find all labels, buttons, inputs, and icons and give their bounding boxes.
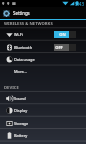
button[interactable]: Wi-Fi on (54, 31, 76, 38)
button[interactable]: Sound (0, 92, 86, 104)
staticText: Battery (14, 133, 28, 138)
other: Settings (3, 10, 10, 17)
staticText: Display (14, 108, 28, 113)
staticText: DEVICE (4, 85, 19, 91)
staticText: Storage (14, 121, 29, 126)
button[interactable]: Storage (0, 117, 86, 129)
button[interactable]: Bluetooth off (54, 44, 76, 51)
staticText: WIRELESS & NETWORKS (4, 21, 53, 27)
button[interactable]: Bluetooth (0, 41, 86, 53)
staticText: Sound (14, 96, 26, 101)
staticText: ON (59, 32, 66, 37)
staticText: 5:43 (75, 1, 85, 7)
staticText: More... (14, 69, 27, 74)
staticText: Settings (13, 10, 30, 16)
staticText: Data usage (14, 57, 35, 62)
staticText: OFF (55, 45, 63, 50)
button[interactable]: More... (0, 65, 86, 77)
button[interactable]: Wi-Fi (0, 28, 86, 40)
button[interactable]: Display (0, 104, 86, 116)
staticText: Wi-Fi (14, 32, 23, 37)
button[interactable]: Settings (0, 7, 86, 19)
button[interactable]: Data usage (0, 53, 86, 65)
staticText: Bluetooth (14, 45, 33, 50)
button[interactable]: Battery (0, 129, 86, 141)
